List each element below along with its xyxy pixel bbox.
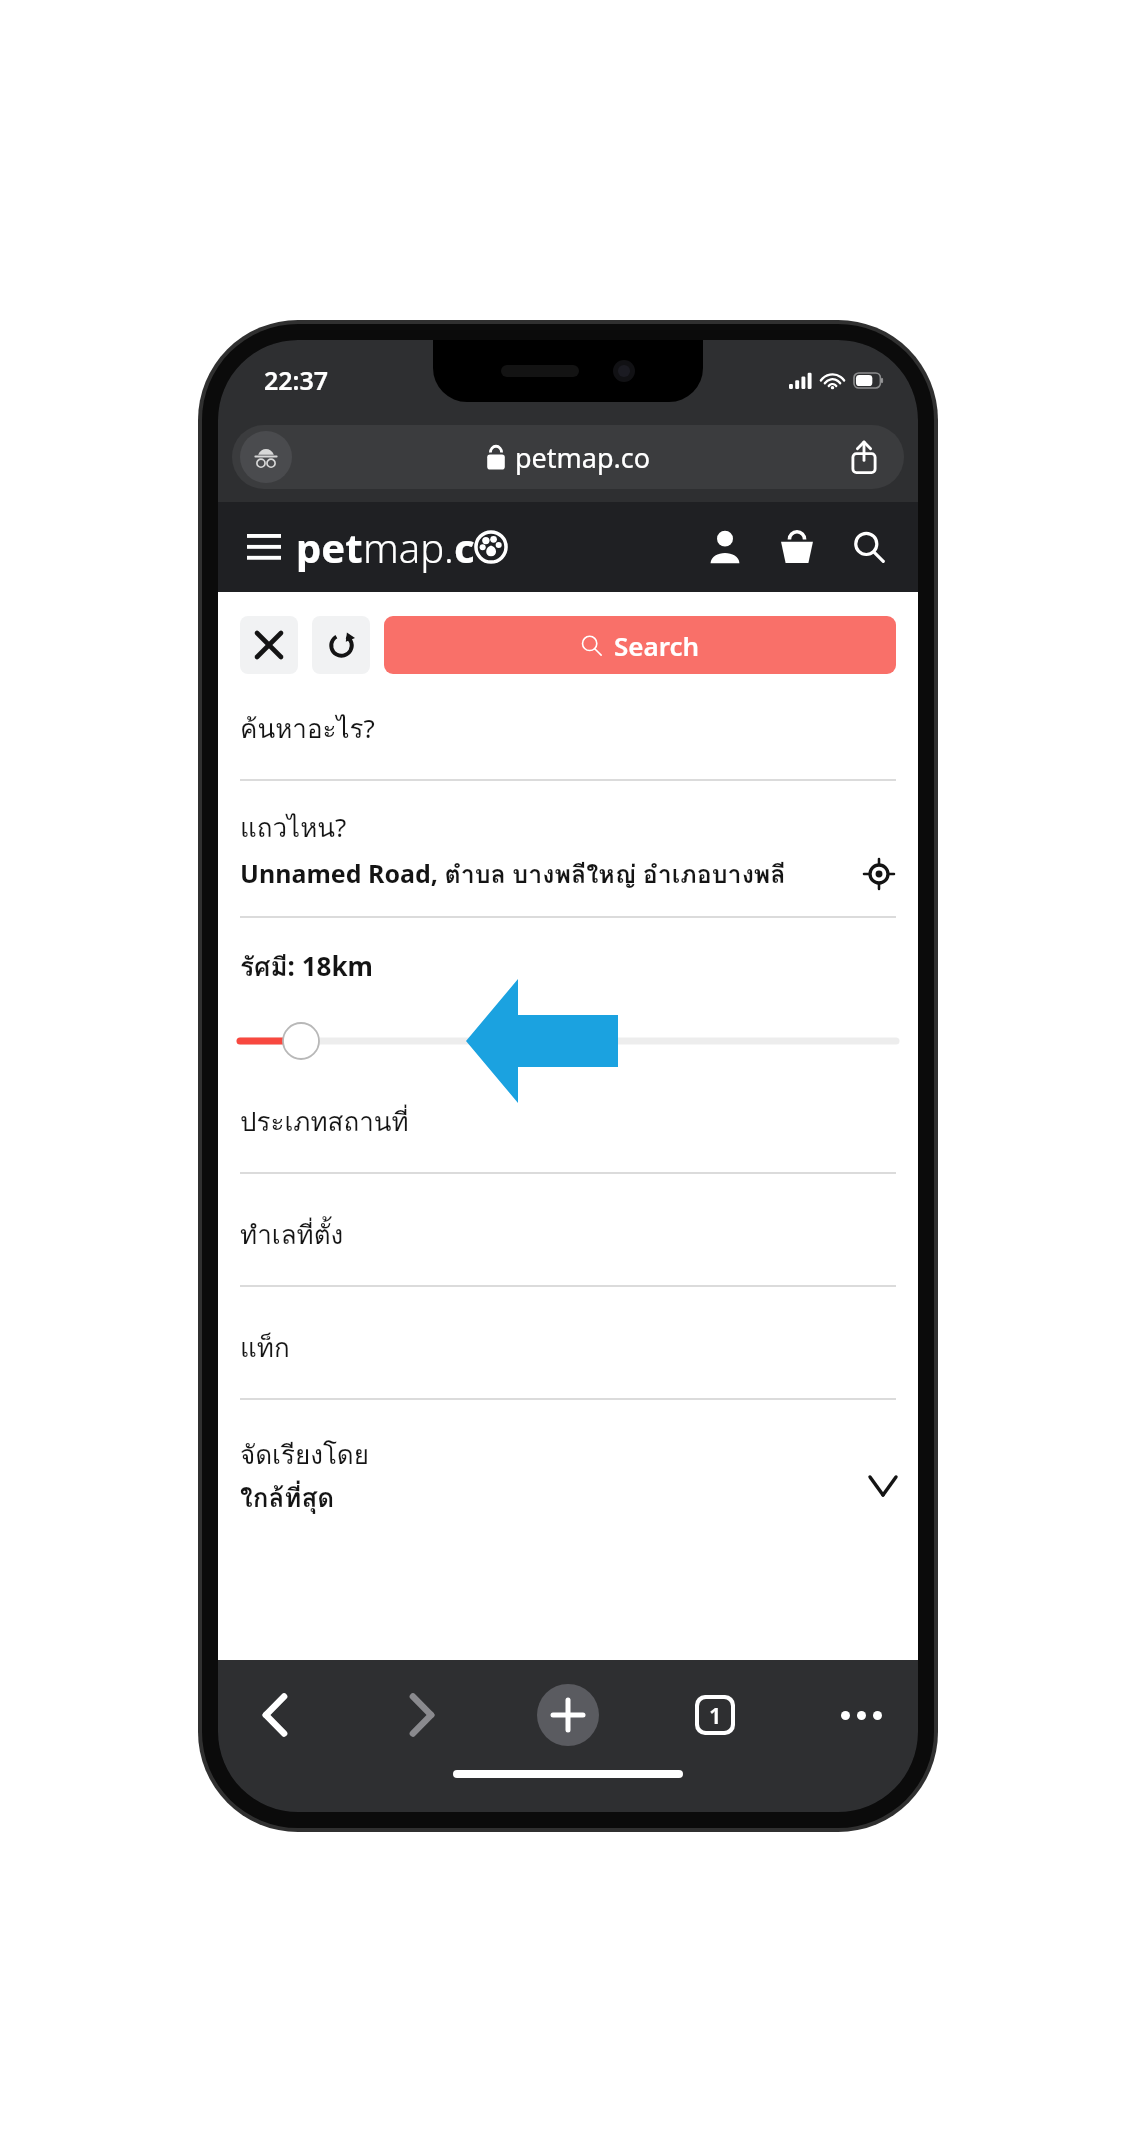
staticText: c: [454, 520, 475, 574]
staticText: Unnamed Road, ตำบล บางพลีใหญ่ อำเภอบางพล…: [240, 854, 862, 894]
button[interactable]: Search: [384, 616, 896, 674]
staticText: จัดเรียงโดย: [240, 1434, 896, 1475]
button[interactable]: Account: [698, 520, 752, 574]
button[interactable]: Private browsing: [240, 431, 292, 483]
button[interactable]: pet: [296, 520, 507, 574]
staticText: รัศมี: 18km: [240, 946, 896, 987]
staticText: ประเภทสถานที่: [240, 1101, 896, 1142]
staticText: แท็ก: [240, 1327, 896, 1368]
staticText: 1: [709, 1700, 722, 1730]
button[interactable]: Clear: [240, 616, 298, 674]
button[interactable]: Tabs: [684, 1684, 746, 1746]
staticText: ใกล้ที่สุด: [240, 1477, 870, 1518]
staticText: map.: [363, 520, 454, 574]
staticText: pet: [296, 520, 363, 574]
staticText: 22:37: [264, 363, 329, 397]
staticText: ค้นหาอะไร?: [240, 708, 896, 749]
staticText: ทำเลที่ตั้ง: [240, 1214, 896, 1255]
button[interactable]: More: [830, 1684, 892, 1746]
button[interactable]: Cart: [770, 520, 824, 574]
button[interactable]: Share: [844, 437, 884, 477]
button[interactable]: Back: [244, 1684, 306, 1746]
staticText: แถวไหน?: [240, 807, 896, 848]
button[interactable]: Menu: [240, 523, 288, 571]
button[interactable]: Private browsing: [232, 425, 904, 489]
staticText: petmap.co: [515, 439, 651, 476]
button[interactable]: Refresh: [312, 616, 370, 674]
button[interactable]: Forward: [391, 1684, 453, 1746]
button[interactable]: Search: [842, 520, 896, 574]
button[interactable]: Use my location: [862, 857, 896, 891]
staticText: Search: [614, 628, 700, 663]
button[interactable]: New tab: [537, 1684, 599, 1746]
